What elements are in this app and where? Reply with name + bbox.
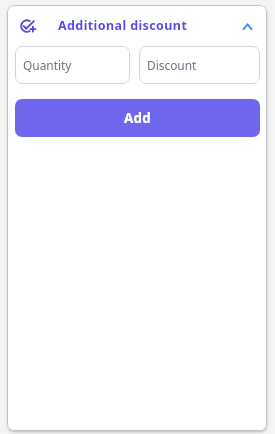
button[interactable]: Additional discount: [7, 5, 267, 46]
button[interactable]: Add: [15, 99, 260, 137]
button[interactable]: Quantity: [15, 46, 130, 84]
staticText: Discount: [147, 57, 197, 73]
staticText: Add: [124, 109, 152, 127]
button[interactable]: Discount: [139, 46, 260, 84]
staticText: Additional discount: [58, 17, 188, 34]
button[interactable]: Collapse section: [234, 13, 260, 39]
staticText: Quantity: [23, 57, 72, 73]
